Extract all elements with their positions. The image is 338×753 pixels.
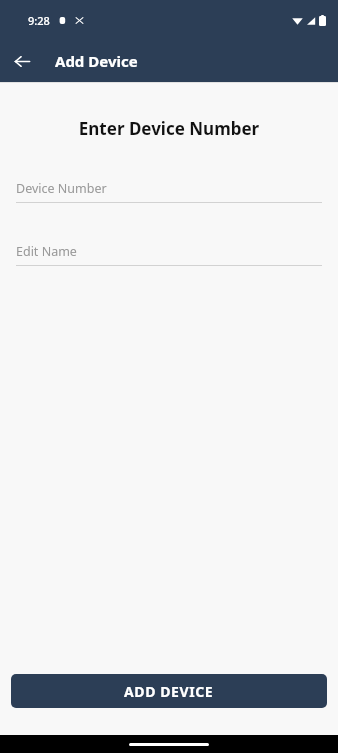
button[interactable]: Back (8, 47, 36, 75)
staticText: Add Device (55, 51, 138, 71)
staticText: Enter Device Number (0, 117, 338, 140)
button[interactable]: Device Number (16, 180, 322, 203)
staticText: ADD DEVICE (124, 682, 214, 701)
staticText: Device Number (16, 180, 107, 197)
button[interactable]: Edit Name (16, 243, 322, 266)
staticText: 9:28 (28, 13, 50, 28)
button[interactable]: ADD DEVICE (11, 674, 327, 708)
staticText: Edit Name (16, 243, 77, 260)
